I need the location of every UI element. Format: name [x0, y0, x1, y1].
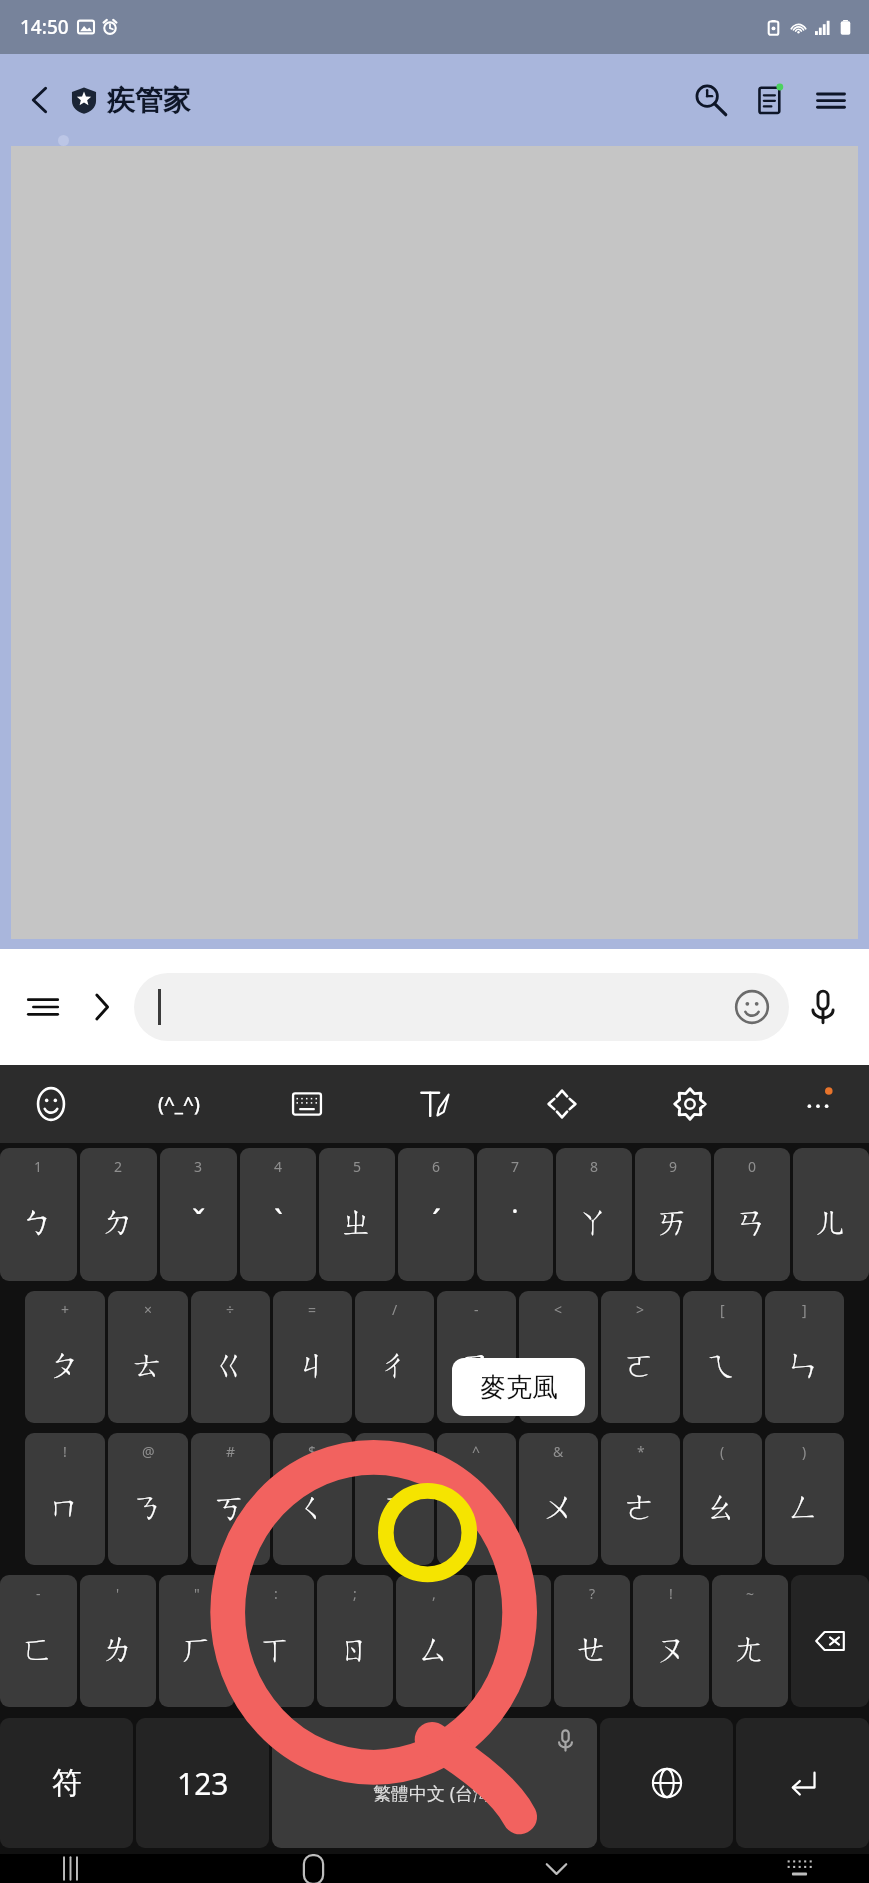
button[interactable]: = — [273, 1291, 352, 1423]
button[interactable]: Notices — [741, 70, 801, 130]
button[interactable]: ÷ — [191, 1291, 270, 1423]
button[interactable]: # — [191, 1433, 270, 1565]
button[interactable]: 5 — [319, 1148, 395, 1281]
staticText: " — [194, 1584, 200, 1603]
staticText: 疾管家 — [107, 83, 191, 118]
staticText: = — [308, 1300, 317, 1319]
staticText: 7 — [511, 1157, 520, 1176]
button[interactable]: ( — [683, 1433, 762, 1565]
staticText: ÷ — [226, 1300, 235, 1319]
staticText: ㄞ — [657, 1202, 690, 1242]
button[interactable]: @ — [108, 1433, 188, 1565]
button[interactable]: Back — [12, 72, 68, 128]
button[interactable]: < — [519, 1291, 598, 1423]
staticText: ㄑ — [296, 1487, 329, 1527]
button[interactable]: Handwriting — [406, 1075, 464, 1133]
staticText: ? — [589, 1584, 596, 1603]
staticText: 符 — [52, 1764, 82, 1802]
staticText: ㄈ — [22, 1629, 55, 1669]
button[interactable]: [ — [683, 1291, 762, 1423]
button[interactable]: - — [0, 1575, 77, 1707]
button[interactable]: 8 — [556, 1148, 632, 1281]
button[interactable]: Switch keyboard — [767, 1854, 831, 1883]
staticText: - — [36, 1584, 41, 1603]
staticText: ) — [802, 1442, 807, 1461]
button[interactable]: Hide keyboard — [524, 1854, 588, 1883]
staticText: ㄧ — [542, 1345, 575, 1385]
button[interactable]: 6 — [398, 1148, 474, 1281]
button[interactable]: ! — [633, 1575, 709, 1707]
button[interactable]: 123 — [136, 1718, 269, 1848]
staticText: ˇ — [192, 1200, 206, 1244]
button[interactable]: Emoticons — [150, 1075, 208, 1133]
button[interactable]: Enter — [736, 1718, 869, 1848]
button[interactable]: + — [25, 1291, 105, 1423]
button[interactable]: Recents — [38, 1854, 102, 1883]
staticText: ㄙ — [418, 1629, 451, 1669]
button[interactable]: 1 — [0, 1148, 77, 1281]
button[interactable]: Expand — [74, 980, 128, 1034]
button[interactable]: ^ — [437, 1433, 516, 1565]
button[interactable]: ) — [765, 1433, 844, 1565]
button[interactable]: * — [601, 1433, 680, 1565]
button[interactable]: Chat menu — [12, 976, 74, 1038]
staticText: ㄊ — [132, 1345, 165, 1385]
button[interactable]: Emoji — [729, 984, 775, 1030]
button[interactable]: Search history — [681, 70, 741, 130]
button[interactable]: $ — [273, 1433, 352, 1565]
button[interactable]: , — [396, 1575, 472, 1707]
button[interactable]: ' — [80, 1575, 156, 1707]
button[interactable]: Change language — [600, 1718, 733, 1848]
button[interactable]: 7 — [477, 1148, 553, 1281]
staticText: ˋ — [274, 1200, 283, 1244]
button[interactable]: ] — [765, 1291, 844, 1423]
staticText: ㄚ — [578, 1202, 611, 1242]
button[interactable]: ; — [317, 1575, 393, 1707]
button[interactable]: 3 — [160, 1148, 237, 1281]
button[interactable]: " — [159, 1575, 235, 1707]
button[interactable]: 2 — [80, 1148, 157, 1281]
button[interactable]: & — [519, 1433, 598, 1565]
staticText: ㄠ — [706, 1487, 739, 1527]
button[interactable]: > — [601, 1291, 680, 1423]
button[interactable]: ! — [25, 1433, 105, 1565]
staticText: ㄢ — [736, 1202, 769, 1242]
button[interactable]: Move cursor — [533, 1075, 591, 1133]
button[interactable]: Settings — [661, 1075, 719, 1133]
button[interactable]: Backspace — [791, 1575, 869, 1707]
button[interactable]: × — [108, 1291, 188, 1423]
staticText: [ — [720, 1300, 725, 1319]
button[interactable]: 9 — [635, 1148, 711, 1281]
button[interactable]: More options — [789, 1075, 847, 1133]
button[interactable]: ? — [554, 1575, 630, 1707]
button[interactable]: Keyboard layout — [278, 1075, 336, 1133]
staticText: : — [274, 1584, 278, 1603]
button[interactable]: 繁體中文 (台灣) — [272, 1718, 597, 1848]
staticText: 14:50 — [20, 14, 69, 40]
staticText: 3 — [194, 1157, 203, 1176]
button[interactable]: ㄦ — [793, 1148, 869, 1281]
button[interactable]: . — [475, 1575, 551, 1707]
staticText: (^_^) — [158, 1091, 200, 1117]
button[interactable]: 0 — [714, 1148, 790, 1281]
button[interactable]: ~ — [712, 1575, 788, 1707]
staticText: 0 — [748, 1157, 757, 1176]
button[interactable]: 4 — [240, 1148, 316, 1281]
button[interactable]: 符 — [0, 1718, 133, 1848]
staticText: ] — [802, 1300, 807, 1319]
button[interactable]: Emoji — [22, 1075, 80, 1133]
staticText: ˙ — [512, 1200, 518, 1244]
button[interactable]: - — [437, 1291, 516, 1423]
staticText: & — [553, 1442, 564, 1461]
staticText: ㄩ — [497, 1629, 530, 1669]
button[interactable]: Microphone — [547, 1722, 583, 1758]
staticText: ㄌ — [102, 1629, 135, 1669]
button[interactable]: / — [355, 1291, 434, 1423]
button[interactable]: : — [238, 1575, 314, 1707]
button[interactable]: % — [355, 1433, 434, 1565]
button[interactable]: Menu — [801, 70, 861, 130]
button[interactable]: Emoji — [134, 973, 789, 1041]
staticText: ㄟ — [706, 1345, 739, 1385]
button[interactable]: Voice input — [789, 973, 857, 1041]
button[interactable]: Home — [281, 1854, 345, 1883]
